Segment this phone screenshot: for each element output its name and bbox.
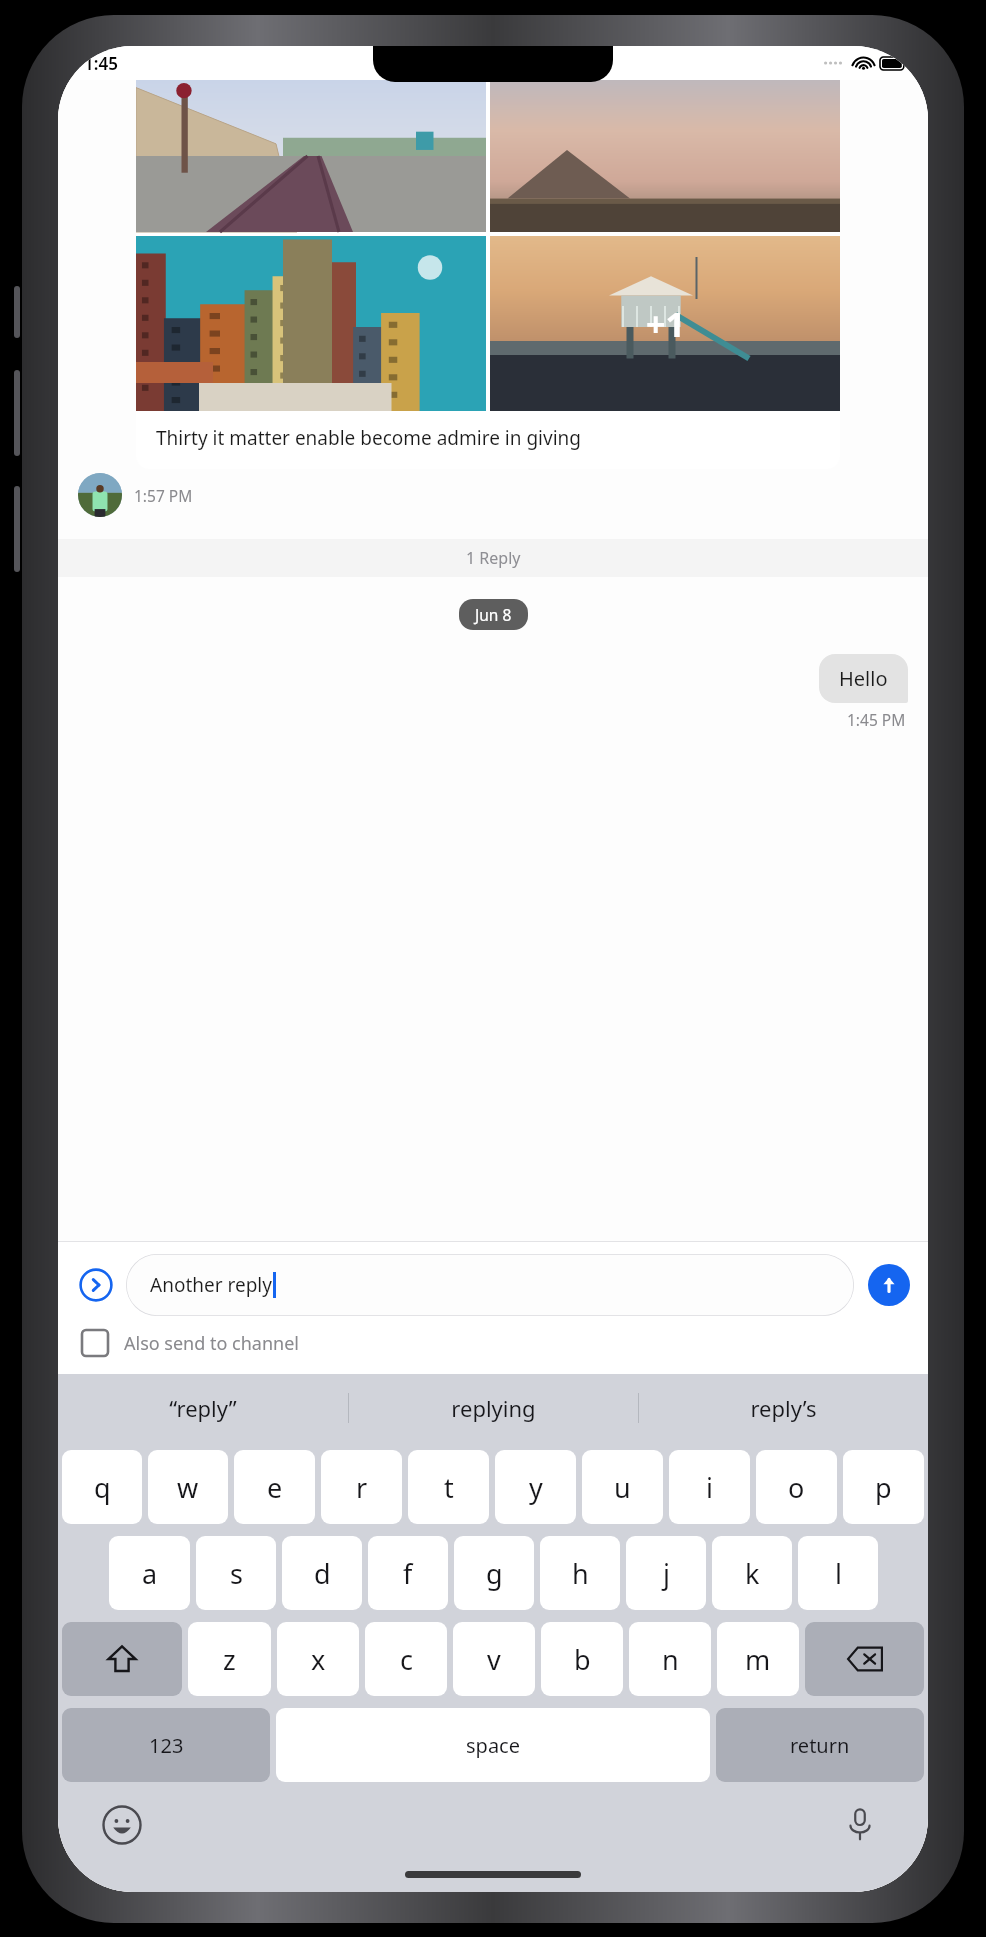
button[interactable]: Shift [62,1622,182,1696]
button[interactable]: c [365,1622,447,1696]
button[interactable] [136,80,486,232]
staticText: w [177,1469,199,1506]
staticText: replying [451,1393,536,1423]
button[interactable]: 123 [62,1708,270,1782]
staticText: y [529,1469,543,1506]
button[interactable]: i [669,1450,750,1524]
button[interactable]: h [540,1536,620,1610]
button[interactable]: 1 Reply [58,539,928,577]
button[interactable]: o [756,1450,837,1524]
button[interactable] [136,236,486,411]
button[interactable]: d [282,1536,362,1610]
button[interactable]: Dictation [838,1803,882,1847]
staticText: l [835,1555,842,1592]
staticText: x [311,1641,326,1678]
button[interactable]: Attach [76,1265,116,1305]
button[interactable]: a [109,1536,190,1610]
button[interactable]: p [843,1450,924,1524]
staticText: +1 [646,301,685,347]
staticText: j [663,1555,670,1592]
button[interactable]: f [368,1536,448,1610]
staticText: f [403,1555,413,1592]
staticText: Hello [839,665,888,692]
button[interactable]: l [798,1536,878,1610]
button[interactable]: Emoji [100,1803,144,1847]
staticText: g [486,1555,503,1592]
staticText: return [790,1732,850,1759]
staticText: s [230,1555,243,1592]
staticText: i [706,1469,713,1506]
button[interactable]: reply’s [639,1374,928,1442]
staticText: v [487,1641,501,1678]
staticText: b [574,1641,591,1678]
staticText: Also send to channel [124,1331,299,1356]
staticText: o [788,1469,805,1506]
button[interactable]: x [277,1622,359,1696]
staticText: z [223,1641,236,1678]
button[interactable]: return [716,1708,924,1782]
button[interactable]: w [148,1450,228,1524]
button[interactable]: e [234,1450,315,1524]
button[interactable]: r [321,1450,402,1524]
button[interactable]: b [541,1622,623,1696]
button[interactable]: +1 [136,80,840,469]
button[interactable]: y [495,1450,576,1524]
staticText: “reply” [169,1393,237,1423]
button[interactable]: +1 [490,236,840,411]
staticText: k [745,1555,760,1592]
button[interactable]: k [712,1536,792,1610]
button[interactable]: Also send to channel [80,1328,928,1358]
button[interactable]: t [408,1450,489,1524]
staticText: t [444,1469,454,1506]
staticText: space [466,1732,520,1759]
button[interactable]: q [62,1450,142,1524]
staticText: reply’s [750,1393,817,1423]
staticText: Another reply [150,1272,272,1298]
staticText: n [662,1641,679,1678]
button[interactable]: j [626,1536,706,1610]
button[interactable]: s [196,1536,276,1610]
staticText: h [572,1555,589,1592]
staticText: c [400,1641,413,1678]
staticText: a [142,1555,158,1592]
staticText: Thirty it matter enable become admire in… [156,425,581,451]
staticText: Jun 8 [475,604,512,625]
button[interactable]: space [276,1708,710,1782]
button[interactable]: z [188,1622,271,1696]
button[interactable]: v [453,1622,535,1696]
staticText: e [267,1469,283,1506]
button[interactable]: “reply” [58,1374,348,1442]
button[interactable]: u [582,1450,663,1524]
staticText: d [314,1555,331,1592]
staticText: p [875,1469,892,1506]
staticText: 1:45 [84,52,118,75]
button[interactable]: Hello [819,654,908,703]
button[interactable] [78,473,122,517]
staticText: 1 Reply [466,547,521,569]
staticText: 1:45 PM [847,709,906,730]
button[interactable]: replying [349,1374,638,1442]
button[interactable]: m [717,1622,799,1696]
staticText: q [94,1469,111,1506]
button[interactable]: Backspace [805,1622,924,1696]
button[interactable]: Send [868,1264,910,1306]
staticText: 123 [149,1732,184,1759]
staticText: 1:57 PM [134,485,193,506]
button[interactable]: g [454,1536,534,1610]
staticText: r [356,1469,368,1506]
button[interactable] [490,80,840,232]
staticText: u [614,1469,631,1506]
staticText: m [745,1641,771,1678]
button[interactable]: Another reply [126,1254,854,1316]
button[interactable]: n [629,1622,711,1696]
